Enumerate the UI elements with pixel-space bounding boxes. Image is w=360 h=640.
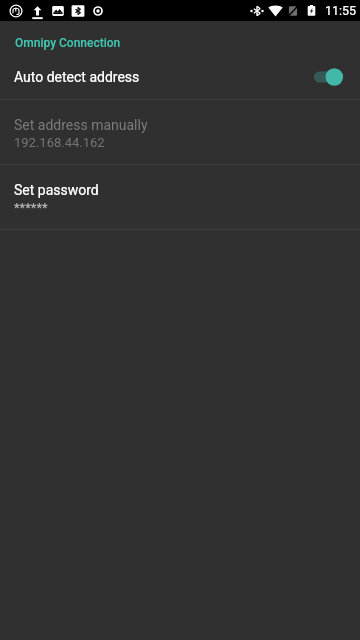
button[interactable]: Auto detect address <box>0 56 360 99</box>
other: Battery charging <box>305 4 318 17</box>
other: No SIM card <box>287 5 299 17</box>
other: Wi-Fi <box>268 3 283 18</box>
staticText: Set address manually <box>14 117 148 133</box>
staticText: Omnipy Connection <box>15 36 121 50</box>
other: Screenshot <box>51 4 65 18</box>
other: Bluetooth connected <box>251 5 263 17</box>
button[interactable]: Auto detect address, on <box>311 66 345 88</box>
staticText: Auto detect address <box>14 69 340 85</box>
button[interactable]: Set address manually <box>0 100 360 164</box>
staticText: Set password <box>14 182 99 198</box>
other: Uploading <box>31 4 44 17</box>
button[interactable]: Set password <box>0 165 360 229</box>
staticText: ****** <box>14 200 48 215</box>
other: Alarm set <box>92 5 104 17</box>
other: Bluetooth tethering <box>71 4 85 18</box>
staticText: 192.168.44.162 <box>14 135 105 150</box>
staticText: 11:55 <box>325 3 357 18</box>
other: USB debugging <box>9 4 23 18</box>
